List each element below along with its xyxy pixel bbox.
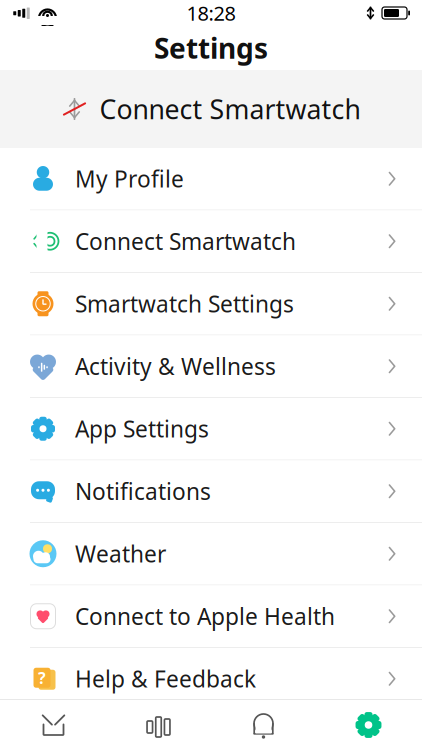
- button[interactable]: Connect Smartwatch: [0, 210, 422, 273]
- staticText: Activity & Wellness: [75, 351, 276, 381]
- button[interactable]: Smartwatch Settings: [0, 273, 422, 335]
- staticText: ?: [38, 667, 46, 688]
- button[interactable]: ?: [0, 648, 422, 709]
- staticText: Weather: [75, 539, 166, 569]
- button[interactable]: Notifications: [0, 460, 422, 523]
- button[interactable]: Settings: [316, 700, 421, 750]
- staticText: Help & Feedback: [75, 664, 256, 694]
- button[interactable]: App Settings: [0, 398, 422, 460]
- staticText: Connect Smartwatch: [75, 226, 296, 256]
- button[interactable]: My Profile: [0, 148, 422, 210]
- button[interactable]: Connect to Apple Health: [0, 585, 422, 648]
- button[interactable]: Home: [1, 700, 106, 750]
- staticText: 18:28: [186, 0, 235, 26]
- staticText: Connect to Apple Health: [75, 601, 335, 631]
- staticText: Settings: [154, 29, 268, 67]
- button[interactable]: Notifications: [211, 700, 316, 750]
- staticText: Connect Smartwatch: [99, 91, 360, 127]
- button[interactable]: Activity & Wellness: [0, 335, 422, 398]
- staticText: Notifications: [75, 476, 211, 506]
- button[interactable]: Connect Smartwatch: [0, 70, 422, 148]
- button[interactable]: Statistics: [106, 700, 211, 750]
- staticText: App Settings: [75, 414, 209, 444]
- staticText: My Profile: [75, 164, 184, 194]
- button[interactable]: Weather: [0, 523, 422, 585]
- staticText: Smartwatch Settings: [75, 289, 294, 319]
